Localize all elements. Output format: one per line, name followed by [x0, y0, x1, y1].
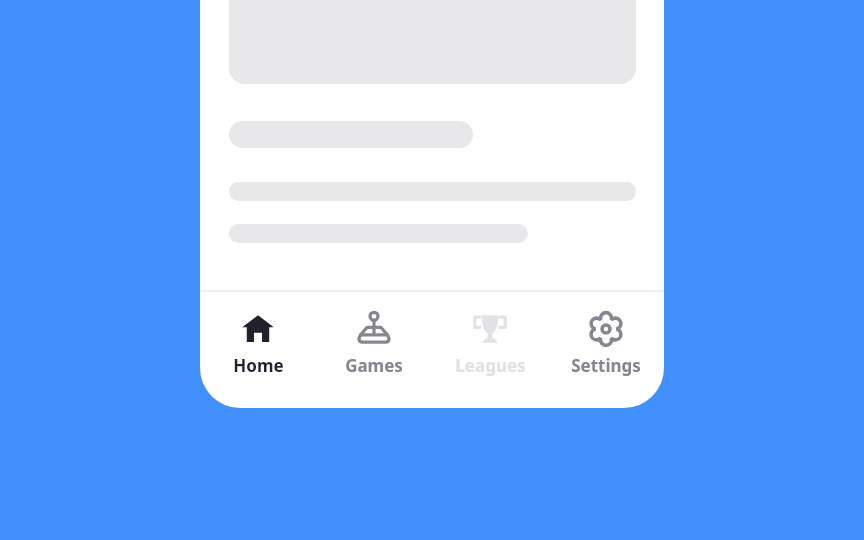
- other: Settings: [587, 310, 625, 348]
- other: Games: [355, 310, 393, 348]
- staticText: Home: [233, 354, 284, 377]
- staticText: Leagues: [455, 354, 526, 377]
- button[interactable]: Home: [200, 291, 316, 408]
- staticText: Games: [345, 354, 403, 377]
- button[interactable]: Leagues: [432, 291, 548, 408]
- other: Leagues: [471, 310, 509, 348]
- other: Home: [239, 310, 277, 348]
- button[interactable]: Games: [316, 291, 432, 408]
- staticText: Settings: [571, 354, 641, 377]
- button[interactable]: Settings: [548, 291, 664, 408]
